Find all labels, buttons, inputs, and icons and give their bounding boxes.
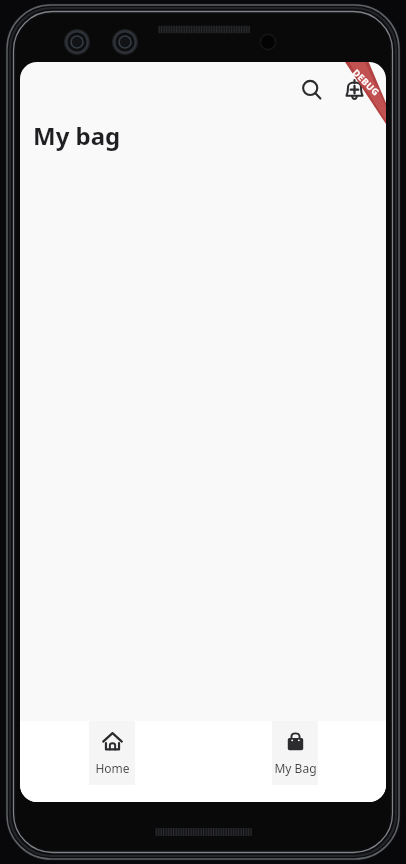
staticText: Home [95, 760, 130, 776]
button[interactable]: Search [291, 69, 333, 111]
button[interactable]: Notifications [333, 69, 375, 111]
button[interactable]: Home [89, 721, 135, 785]
staticText: DEBUG [351, 66, 382, 98]
staticText: My bag [33, 119, 121, 152]
button[interactable]: My Bag [272, 721, 318, 785]
staticText: My Bag [274, 760, 317, 776]
